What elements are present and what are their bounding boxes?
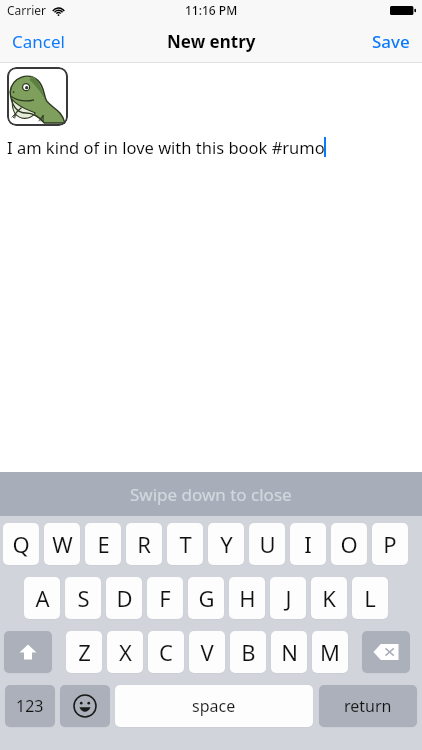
staticText: D xyxy=(116,583,133,613)
button[interactable]: C xyxy=(148,631,184,673)
staticText: Y xyxy=(220,529,233,559)
button[interactable]: V xyxy=(189,631,225,673)
staticText: E xyxy=(97,529,110,559)
staticText: I am kind of in love with this book #rum… xyxy=(7,136,325,158)
button[interactable]: Shift xyxy=(4,631,52,673)
button[interactable]: O xyxy=(331,523,367,565)
staticText: New entry xyxy=(167,30,256,53)
staticText: C xyxy=(159,637,173,667)
button[interactable]: N xyxy=(271,631,307,673)
button[interactable]: W xyxy=(44,523,80,565)
staticText: Carrier xyxy=(7,2,47,18)
staticText: Cancel xyxy=(12,30,65,53)
button[interactable]: K xyxy=(311,577,347,619)
staticText: B xyxy=(241,637,256,667)
staticText: return xyxy=(344,695,392,717)
button[interactable]: 123 xyxy=(5,685,55,727)
button[interactable]: Attached image xyxy=(7,67,68,126)
button[interactable]: I xyxy=(290,523,326,565)
button[interactable]: T xyxy=(167,523,203,565)
staticText: G xyxy=(198,583,215,613)
staticText: P xyxy=(383,529,397,559)
button[interactable]: D xyxy=(106,577,142,619)
button[interactable]: J xyxy=(270,577,306,619)
button[interactable]: L xyxy=(352,577,388,619)
staticText: S xyxy=(77,583,90,613)
button[interactable]: S xyxy=(65,577,101,619)
button[interactable]: Q xyxy=(3,523,39,565)
button[interactable]: Z xyxy=(66,631,102,673)
staticText: A xyxy=(35,583,50,613)
button[interactable]: Cancel xyxy=(0,22,77,61)
staticText: K xyxy=(322,583,336,613)
button[interactable]: M xyxy=(312,631,348,673)
button[interactable]: R xyxy=(126,523,162,565)
staticText: U xyxy=(259,529,276,559)
staticText: 123 xyxy=(16,695,44,717)
button[interactable]: Save xyxy=(360,22,422,61)
button[interactable]: A xyxy=(24,577,60,619)
button[interactable]: E xyxy=(85,523,121,565)
staticText: Save xyxy=(372,30,410,53)
staticText: T xyxy=(179,529,192,559)
staticText: Z xyxy=(78,637,91,667)
staticText: R xyxy=(137,529,151,559)
button[interactable]: F xyxy=(147,577,183,619)
staticText: Q xyxy=(12,529,30,559)
staticText: O xyxy=(340,529,358,559)
button[interactable]: H xyxy=(229,577,265,619)
staticText: J xyxy=(285,583,292,613)
button[interactable]: return xyxy=(319,685,417,727)
staticText: space xyxy=(192,695,236,717)
button[interactable]: Y xyxy=(208,523,244,565)
staticText: X xyxy=(119,637,132,667)
button[interactable]: B xyxy=(230,631,266,673)
button[interactable]: G xyxy=(188,577,224,619)
button[interactable]: Backspace xyxy=(362,631,410,673)
staticText: W xyxy=(52,529,73,559)
staticText: V xyxy=(200,637,214,667)
staticText: L xyxy=(364,583,376,613)
staticText: F xyxy=(159,583,171,613)
staticText: I xyxy=(304,529,312,559)
button[interactable]: X xyxy=(107,631,143,673)
button[interactable]: P xyxy=(372,523,408,565)
staticText: M xyxy=(320,637,340,667)
button[interactable]: space xyxy=(115,685,313,727)
staticText: 11:16 PM xyxy=(185,2,238,18)
button[interactable]: U xyxy=(249,523,285,565)
button[interactable]: Swipe down to close xyxy=(0,472,422,516)
staticText: H xyxy=(239,583,256,613)
button[interactable]: Emoji xyxy=(60,685,110,727)
staticText: Swipe down to close xyxy=(130,483,292,506)
staticText: N xyxy=(281,637,298,667)
